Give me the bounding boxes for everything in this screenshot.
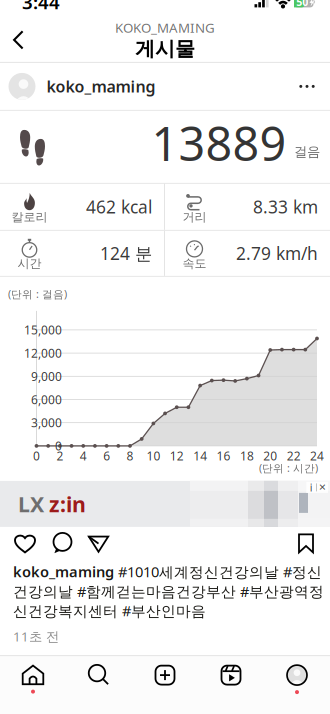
staticText: i [310, 480, 313, 494]
staticText: z:in [49, 490, 86, 518]
staticText: 2 [56, 448, 63, 464]
button[interactable]: Profile [264, 656, 330, 702]
staticText: ✕ [318, 482, 326, 493]
staticText: 시간 [17, 256, 41, 271]
staticText: 13889 [151, 112, 286, 174]
staticText: 11초 전 [13, 627, 59, 645]
staticText: koko_maming #1010세계정신건강의날 #정신건강의날 #함께걷는마… [13, 562, 324, 620]
staticText: 칼로리 [11, 209, 47, 224]
button[interactable]: Back [0, 21, 40, 58]
staticText: LX [18, 490, 44, 518]
staticText: koko_maming [46, 76, 155, 97]
staticText: 3:44 [22, 0, 60, 14]
staticText: 8 [126, 448, 133, 464]
staticText: 6 [103, 448, 110, 464]
button[interactable]: Close ad [306, 482, 328, 493]
staticText: 게시물 [135, 36, 195, 61]
button[interactable]: Create [132, 656, 198, 702]
button[interactable]: koko_maming [8, 73, 155, 100]
staticText: 462 kcal [86, 195, 152, 218]
staticText: 2.79 km/h [236, 242, 318, 265]
staticText: KOKO_MAMING [115, 19, 215, 36]
button[interactable]: Search [66, 656, 132, 702]
button[interactable]: 11초 전 [13, 620, 59, 647]
staticText: (단위 : 걸음) [8, 287, 67, 301]
button[interactable]: More options [296, 69, 318, 103]
button[interactable]: Like [13, 527, 37, 559]
staticText: 50 [296, 0, 308, 9]
staticText: 16 [216, 448, 230, 464]
button[interactable]: Reels [198, 656, 264, 702]
staticText: 12,000 [24, 345, 62, 361]
staticText: 9,000 [31, 368, 62, 384]
staticText: 10 [146, 448, 160, 464]
staticText: 속도 [182, 256, 206, 271]
staticText: 14 [193, 448, 207, 464]
staticText: 0 [55, 438, 62, 454]
staticText: 22 [287, 448, 301, 464]
staticText: 6,000 [31, 391, 62, 407]
staticText: 3,000 [31, 415, 62, 431]
staticText: 거리 [182, 209, 206, 224]
staticText: 0 [33, 448, 40, 464]
staticText: 24 [310, 448, 324, 464]
staticText: 18 [240, 448, 254, 464]
button[interactable]: Home [0, 656, 66, 702]
staticText: 12 [170, 448, 184, 464]
staticText: (단위 : 시간) [259, 461, 318, 475]
staticText: 8.33 km [253, 195, 318, 218]
button[interactable]: Save [296, 527, 316, 559]
staticText: 4 [80, 448, 87, 464]
staticText: 20 [263, 448, 277, 464]
button[interactable]: Comment [37, 527, 74, 560]
button[interactable]: Share [74, 527, 110, 559]
staticText: 124 분 [100, 242, 152, 265]
staticText: 15,000 [24, 322, 62, 338]
staticText: 걸음 [294, 144, 320, 160]
